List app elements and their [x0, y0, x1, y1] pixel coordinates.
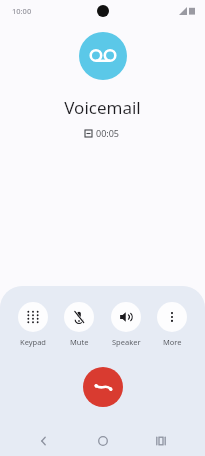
- staticText: 10:00: [12, 6, 32, 16]
- button[interactable]: End call: [83, 367, 123, 407]
- staticText: Voicemail: [64, 96, 141, 119]
- staticText: Mute: [70, 337, 89, 347]
- button[interactable]: Recents: [147, 427, 175, 455]
- staticText: More: [163, 337, 182, 347]
- button[interactable]: Mute: [60, 300, 98, 349]
- button[interactable]: More: [153, 300, 191, 349]
- button[interactable]: Back: [30, 427, 58, 455]
- staticText: Keypad: [20, 337, 46, 347]
- button[interactable]: Home: [89, 427, 117, 455]
- staticText: Speaker: [112, 337, 141, 347]
- button[interactable]: Speaker: [107, 300, 145, 349]
- staticText: 00:05: [96, 127, 120, 139]
- button[interactable]: Keypad: [14, 300, 52, 349]
